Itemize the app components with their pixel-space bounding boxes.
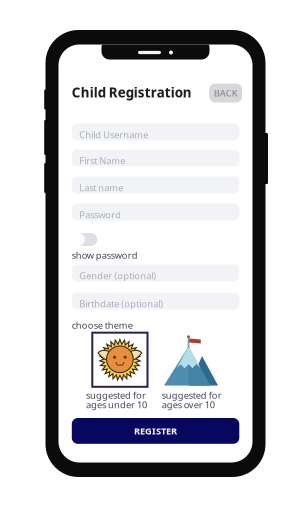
button[interactable]: REGISTER — [72, 418, 239, 444]
button[interactable]: Theme suggested for ages under 10 — [92, 333, 147, 387]
button[interactable]: Theme suggested for ages over 10 — [163, 335, 220, 385]
staticText: Last name — [79, 181, 123, 194]
button[interactable]: Password — [72, 203, 239, 220]
staticText: ages under 10 — [86, 398, 147, 411]
button[interactable]: Last name — [72, 176, 239, 193]
staticText: Birthdate (optional) — [79, 297, 163, 310]
staticText: ages over 10 — [162, 398, 215, 411]
button[interactable]: Birthdate (optional) — [72, 292, 239, 309]
button[interactable]: Child Username — [72, 123, 239, 140]
staticText: suggested for — [162, 389, 222, 401]
button[interactable]: BACK — [209, 83, 242, 102]
staticText: show password — [72, 249, 138, 261]
staticText: Child Username — [79, 128, 148, 141]
staticText: BACK — [214, 87, 238, 99]
staticText: Gender (optional) — [79, 269, 156, 282]
staticText: First Name — [79, 154, 125, 167]
staticText: suggested for — [86, 389, 146, 401]
staticText: Password — [79, 208, 121, 221]
staticText: choose theme — [72, 319, 133, 331]
staticText: REGISTER — [134, 425, 177, 437]
button[interactable]: Gender (optional) — [72, 264, 239, 281]
button[interactable]: First Name — [72, 149, 239, 166]
button[interactable]: Show password — [72, 233, 97, 246]
staticText: Child Registration — [72, 83, 192, 101]
